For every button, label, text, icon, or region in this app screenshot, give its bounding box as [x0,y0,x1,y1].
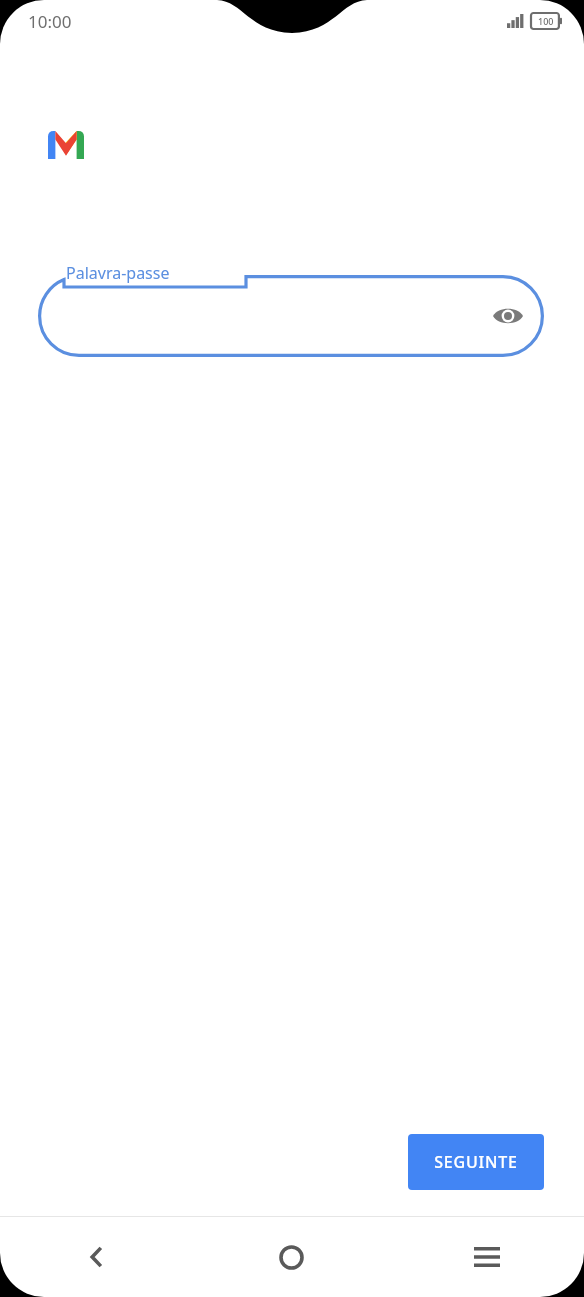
button[interactable]: Back [0,1217,194,1297]
staticText: Palavra-passe [66,262,170,284]
button[interactable]: SEGUINTE [408,1134,544,1190]
staticText: 10:00 [28,10,72,33]
staticText: 100 [538,15,554,27]
button[interactable]: Mostrar palavra-passe [486,294,530,338]
button[interactable]: Home [194,1217,389,1297]
staticText: SEGUINTE [434,1151,518,1173]
button[interactable]: Palavra-passe [38,261,544,357]
button[interactable]: Recent apps [389,1217,584,1297]
